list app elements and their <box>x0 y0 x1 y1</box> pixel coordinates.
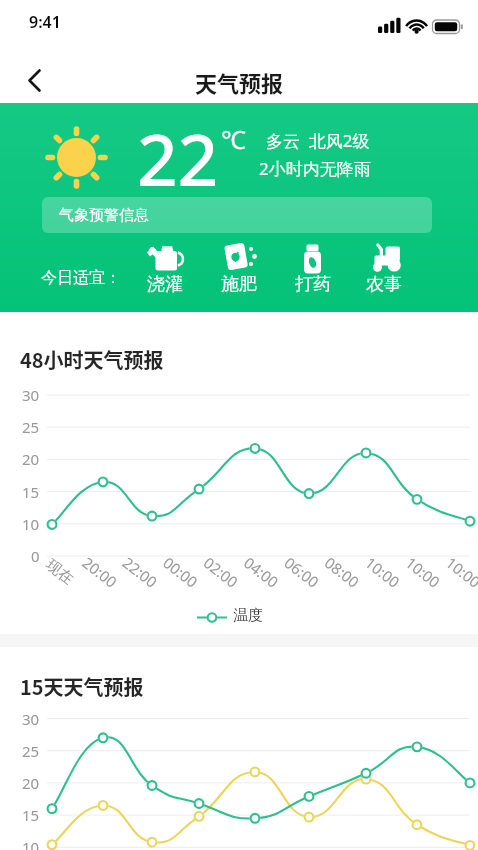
staticText: 15天天气预报 <box>20 672 144 701</box>
staticText: 48小时天气预报 <box>20 345 164 374</box>
staticText: 22 <box>137 110 219 207</box>
staticText: 农事 <box>366 273 402 296</box>
staticText: 9:41 <box>29 11 61 33</box>
staticText: ℃ <box>221 122 246 156</box>
button[interactable]: 施肥 <box>204 240 274 296</box>
staticText: 施肥 <box>221 273 257 296</box>
button[interactable]: 浇灌 <box>130 240 200 296</box>
staticText: 气象预警信息 <box>59 206 149 225</box>
button[interactable]: 气象预警信息 <box>42 197 432 233</box>
staticText: 天气预报 <box>0 66 478 98</box>
staticText: 打药 <box>295 273 331 296</box>
button[interactable]: 温度 <box>195 603 275 631</box>
staticText: 多云 北风2级 <box>266 129 370 152</box>
button[interactable]: 农事 <box>349 240 419 296</box>
staticText: 温度 <box>233 606 263 625</box>
staticText: 浇灌 <box>147 273 183 296</box>
button[interactable]: 打药 <box>278 240 348 296</box>
button[interactable] <box>12 60 54 102</box>
staticText: 今日适宜： <box>41 268 121 288</box>
staticText: 2小时内无降雨 <box>259 157 371 180</box>
